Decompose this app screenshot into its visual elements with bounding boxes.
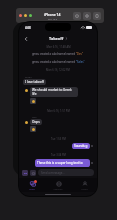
staticText: iPhone 14 — [44, 12, 61, 17]
staticText: Tue 3:34 PM — [51, 153, 66, 157]
staticText: I love takeoff — [25, 80, 44, 84]
staticText: Mon 6:16, 1:51 PM — [47, 109, 70, 113]
staticText: We should market to Greek life — [32, 88, 76, 96]
button[interactable]: Back — [19, 33, 97, 43]
button[interactable]: These this is a super long text to test … — [35, 159, 90, 167]
staticText: Logins — [81, 188, 88, 191]
staticText: gmeu created a subchannel named — [32, 60, 76, 64]
staticText: Oops — [32, 120, 40, 124]
button[interactable]: Channels — [45, 180, 71, 191]
button[interactable]: Camera — [30, 170, 36, 176]
staticText: Chats — [29, 188, 35, 191]
staticText: Takeoff — [49, 36, 64, 41]
staticText: 4:58 — [25, 26, 31, 30]
button[interactable]: Maximize — [29, 14, 32, 17]
staticText: iOS 16.0 — [48, 17, 58, 20]
button[interactable]: Chats — [19, 180, 45, 191]
button[interactable]: Close — [19, 14, 22, 17]
button[interactable]: Logins — [71, 180, 97, 191]
button[interactable]: Settings — [83, 12, 91, 20]
staticText: "Sales" — [76, 60, 85, 64]
staticText: Channels — [53, 188, 63, 191]
staticText: dan — [32, 115, 37, 118]
staticText: gmeu created a subchannel named — [32, 52, 76, 56]
button[interactable]: Home — [73, 12, 81, 20]
staticText: "Dev" — [76, 52, 84, 56]
button[interactable]: Oops — [30, 119, 42, 125]
button[interactable]: Sounds g — [72, 143, 90, 149]
staticText: gMeu — [25, 75, 32, 78]
staticText: Tue 1:53 PM — [51, 137, 66, 141]
staticText: Mon 6:16, 12:02 PM — [46, 68, 70, 72]
button[interactable]: Attach — [22, 170, 28, 176]
staticText: Mon 6:16, 11:48 AM — [46, 45, 71, 49]
staticText: Send a message... — [41, 171, 65, 175]
button[interactable]: Back — [22, 35, 29, 42]
button[interactable]: Minimize — [24, 14, 27, 17]
button[interactable]: We should market to Greek life — [30, 87, 78, 97]
button[interactable]: Screenshot — [93, 12, 101, 20]
staticText: Sounds g — [74, 144, 88, 148]
button[interactable]: I love takeoff — [23, 79, 46, 85]
button[interactable]: Send a message... — [38, 169, 94, 176]
staticText: These this is a super long text to test … — [37, 161, 88, 165]
